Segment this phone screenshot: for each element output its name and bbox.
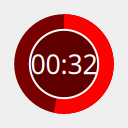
staticText: 00:32 [30,46,97,82]
button[interactable]: Timer, 32 seconds remaining [0,0,128,128]
